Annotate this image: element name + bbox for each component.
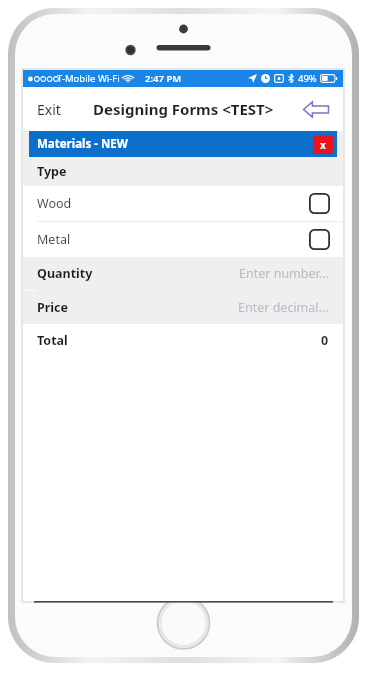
button[interactable]: Exit bbox=[29, 94, 69, 125]
staticText: Total bbox=[37, 332, 68, 349]
staticText: T-Mobile Wi-Fi bbox=[57, 72, 120, 85]
staticText: Designing Forms <TEST> bbox=[93, 99, 274, 119]
staticText: Price bbox=[37, 299, 69, 316]
staticText: Exit bbox=[37, 100, 61, 119]
button[interactable]: Wood bbox=[23, 186, 343, 221]
button[interactable]: Back bbox=[299, 92, 333, 126]
button[interactable]: Close bbox=[313, 135, 333, 154]
staticText: x bbox=[320, 138, 326, 152]
staticText: Enter number... bbox=[239, 265, 329, 282]
button[interactable]: Total bbox=[23, 324, 343, 357]
staticText: 2:47 PM bbox=[145, 72, 182, 85]
staticText: Quantity bbox=[37, 265, 93, 282]
staticText: Metal bbox=[37, 231, 71, 248]
staticText: Type bbox=[37, 163, 67, 180]
button[interactable]: Quantity bbox=[23, 257, 343, 290]
staticText: Materials - NEW bbox=[37, 136, 128, 152]
staticText: 49% bbox=[298, 72, 317, 85]
staticText: Wood bbox=[37, 195, 72, 212]
button[interactable]: Metal bbox=[23, 222, 343, 257]
staticText: Enter decimal... bbox=[238, 299, 329, 316]
button[interactable]: Price bbox=[23, 291, 343, 324]
staticText: 0 bbox=[321, 332, 329, 349]
